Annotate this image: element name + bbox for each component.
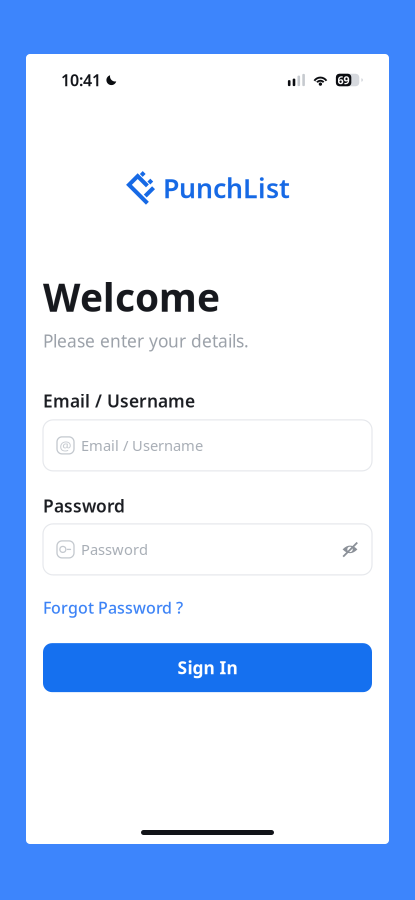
staticText: Sign In <box>177 656 237 679</box>
staticText: Forgot Password ? <box>43 597 183 618</box>
staticText: Please enter your details. <box>43 329 249 352</box>
staticText: Welcome <box>43 271 220 322</box>
staticText: Password <box>81 540 148 559</box>
button[interactable]: Forgot Password ? <box>43 597 183 618</box>
staticText: Password <box>43 494 125 517</box>
staticText: Email / Username <box>43 389 195 412</box>
button[interactable]: Sign In <box>43 643 372 692</box>
staticText: @ <box>59 436 71 454</box>
staticText: Email / Username <box>81 436 203 455</box>
staticText: PunchList <box>163 170 290 206</box>
staticText: 10:41 <box>61 69 101 91</box>
staticText: 69 <box>338 73 350 87</box>
